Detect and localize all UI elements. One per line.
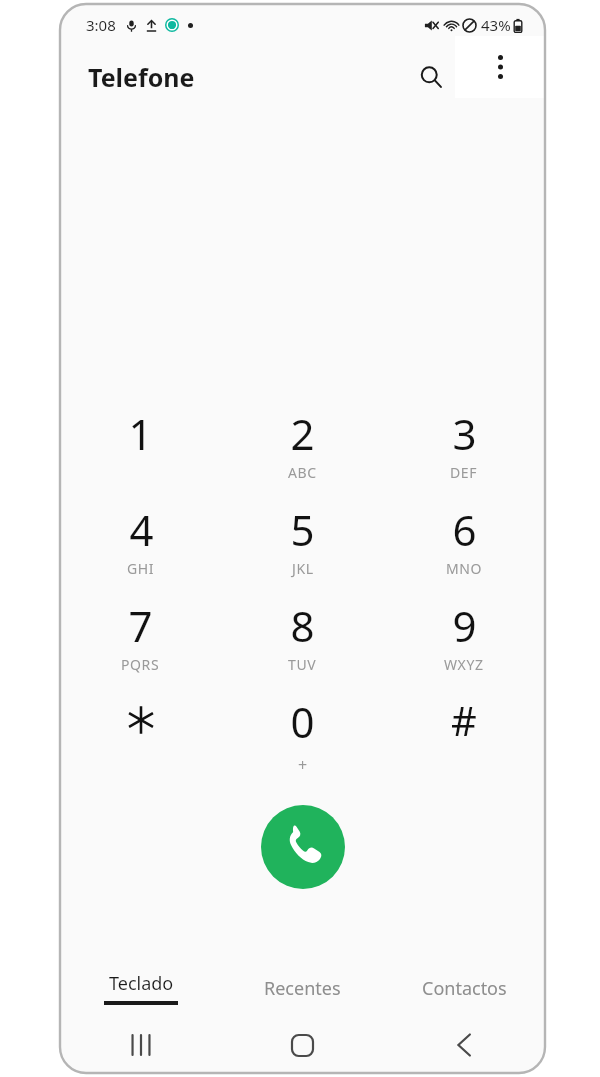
staticText: 5 — [290, 501, 315, 558]
staticText: GHI — [127, 559, 155, 578]
staticText: 43% — [481, 15, 511, 35]
button[interactable]: Home — [221, 1017, 383, 1073]
button[interactable]: Recent apps — [60, 1017, 221, 1073]
button[interactable]: Back — [383, 1017, 545, 1073]
staticText: # — [451, 693, 477, 747]
button[interactable]: 4 — [60, 495, 221, 591]
staticText: 7 — [128, 597, 153, 654]
staticText: 8 — [290, 597, 315, 654]
staticText: Recentes — [264, 976, 341, 1001]
button[interactable]: 1 — [60, 399, 221, 495]
button[interactable]: 8 — [221, 591, 383, 687]
staticText: + — [298, 754, 308, 776]
button[interactable]: # — [383, 687, 545, 783]
staticText: PQRS — [121, 655, 160, 674]
button[interactable]: Search — [407, 53, 455, 101]
button[interactable]: 0 — [221, 687, 383, 783]
staticText: Contactos — [422, 976, 507, 1001]
staticText: 0 — [290, 693, 315, 750]
button[interactable]: Teclado — [60, 959, 221, 1017]
button[interactable]: 9 — [383, 591, 545, 687]
button[interactable]: Call — [261, 805, 345, 889]
button[interactable]: Recentes — [221, 959, 383, 1017]
staticText: ABC — [288, 463, 317, 482]
button[interactable]: More options — [455, 36, 545, 98]
staticText: Teclado — [109, 971, 174, 996]
staticText: 2 — [290, 405, 315, 462]
staticText: DEF — [450, 463, 478, 482]
staticText: 9 — [452, 597, 477, 654]
button[interactable]: Contactos — [383, 959, 545, 1017]
button[interactable] — [60, 687, 221, 783]
staticText: WXYZ — [444, 655, 484, 674]
staticText: 4 — [129, 501, 154, 558]
button[interactable]: 2 — [221, 399, 383, 495]
staticText: 3 — [452, 405, 477, 462]
staticText: JKL — [292, 559, 314, 578]
staticText: TUV — [288, 655, 317, 674]
button[interactable]: 7 — [60, 591, 221, 687]
staticText: 6 — [452, 501, 477, 558]
staticText: 3:08 — [86, 15, 116, 35]
button[interactable]: 3 — [383, 399, 545, 495]
staticText: MNO — [446, 559, 483, 578]
staticText: Telefone — [88, 60, 195, 94]
staticText: 1 — [128, 405, 153, 462]
button[interactable]: 6 — [383, 495, 545, 591]
button[interactable]: 5 — [221, 495, 383, 591]
